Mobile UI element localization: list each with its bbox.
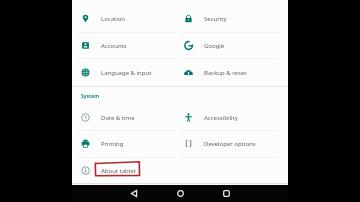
button[interactable]: Language & input [72,59,180,86]
staticText: Language & input [101,69,152,77]
button[interactable]: Home [172,185,188,202]
staticText: Printing [101,140,124,148]
button[interactable]: Location [72,5,180,32]
button[interactable]: Back [126,185,142,202]
staticText: Location [101,15,126,23]
staticText: Accounts [101,42,127,50]
staticText: Backup & reset [204,69,247,77]
button[interactable]: Accounts [72,32,180,59]
staticText: Developer options [204,140,256,148]
button[interactable]: Backup & reset [175,59,283,86]
button[interactable]: Accessibility [175,104,283,131]
staticText: System [81,93,100,100]
staticText: Google [204,42,225,50]
button[interactable]: Printing [72,130,180,157]
button[interactable]: Developer options [175,130,283,157]
button[interactable]: Google [175,32,283,59]
button[interactable]: About tablet [72,157,180,184]
button[interactable]: Security [175,5,283,32]
button[interactable]: Recents [218,185,234,202]
staticText: Security [204,15,227,23]
button[interactable]: Date & time [72,104,180,131]
staticText: Accessibility [204,114,238,122]
staticText: Date & time [101,114,135,122]
staticText: About tablet [101,167,136,175]
